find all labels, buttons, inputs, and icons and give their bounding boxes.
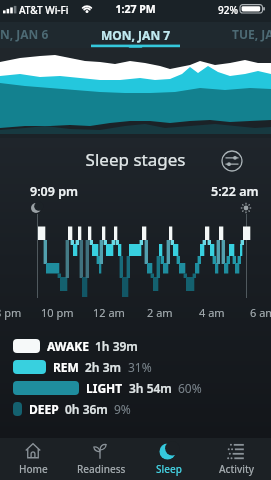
- button[interactable]: Sleep: [135, 438, 203, 480]
- staticText: 8 pm: [0, 305, 22, 320]
- staticText: 6 am: [250, 305, 271, 320]
- staticText: 2 am: [147, 305, 173, 320]
- staticText: 3h 54m: [129, 380, 172, 395]
- staticText: 2h 3m: [85, 359, 122, 374]
- staticText: AT&T Wi-Fi: [19, 3, 69, 17]
- staticText: Readiness: [77, 462, 126, 476]
- staticText: 4 am: [199, 305, 225, 320]
- button[interactable]: N, JAN 6: [0, 26, 56, 44]
- staticText: MON, JAN 7: [101, 27, 171, 43]
- staticText: LIGHT: [86, 380, 123, 395]
- staticText: 60%: [178, 380, 202, 395]
- button[interactable]: TUE, JAN 8: [232, 26, 271, 44]
- button[interactable]: [221, 150, 243, 172]
- staticText: 1h 39m: [95, 338, 138, 353]
- staticText: 1:27 PM: [0, 2, 271, 16]
- staticText: N, JAN 6: [0, 26, 49, 42]
- button[interactable]: Activity: [203, 438, 271, 480]
- staticText: 5:22 am: [211, 183, 259, 200]
- staticText: REM: [53, 359, 79, 374]
- staticText: 9%: [114, 401, 131, 416]
- staticText: Sleep: [156, 462, 182, 476]
- staticText: DEEP: [29, 401, 59, 416]
- staticText: 92%: [218, 3, 238, 17]
- staticText: 0h 36m: [65, 401, 108, 416]
- staticText: Home: [19, 462, 48, 476]
- staticText: AWAKE: [47, 338, 89, 353]
- staticText: 12 am: [93, 305, 125, 320]
- staticText: Activity: [219, 462, 255, 476]
- button[interactable]: Readiness: [67, 438, 135, 480]
- staticText: Sleep stages: [0, 148, 271, 171]
- staticText: 31%: [128, 359, 152, 374]
- staticText: 9:09 pm: [30, 183, 78, 200]
- button[interactable]: MON, JAN 7: [91, 23, 181, 47]
- staticText: TUE, JAN 8: [232, 26, 271, 42]
- button[interactable]: Home: [0, 438, 67, 480]
- staticText: 10 pm: [41, 305, 74, 320]
